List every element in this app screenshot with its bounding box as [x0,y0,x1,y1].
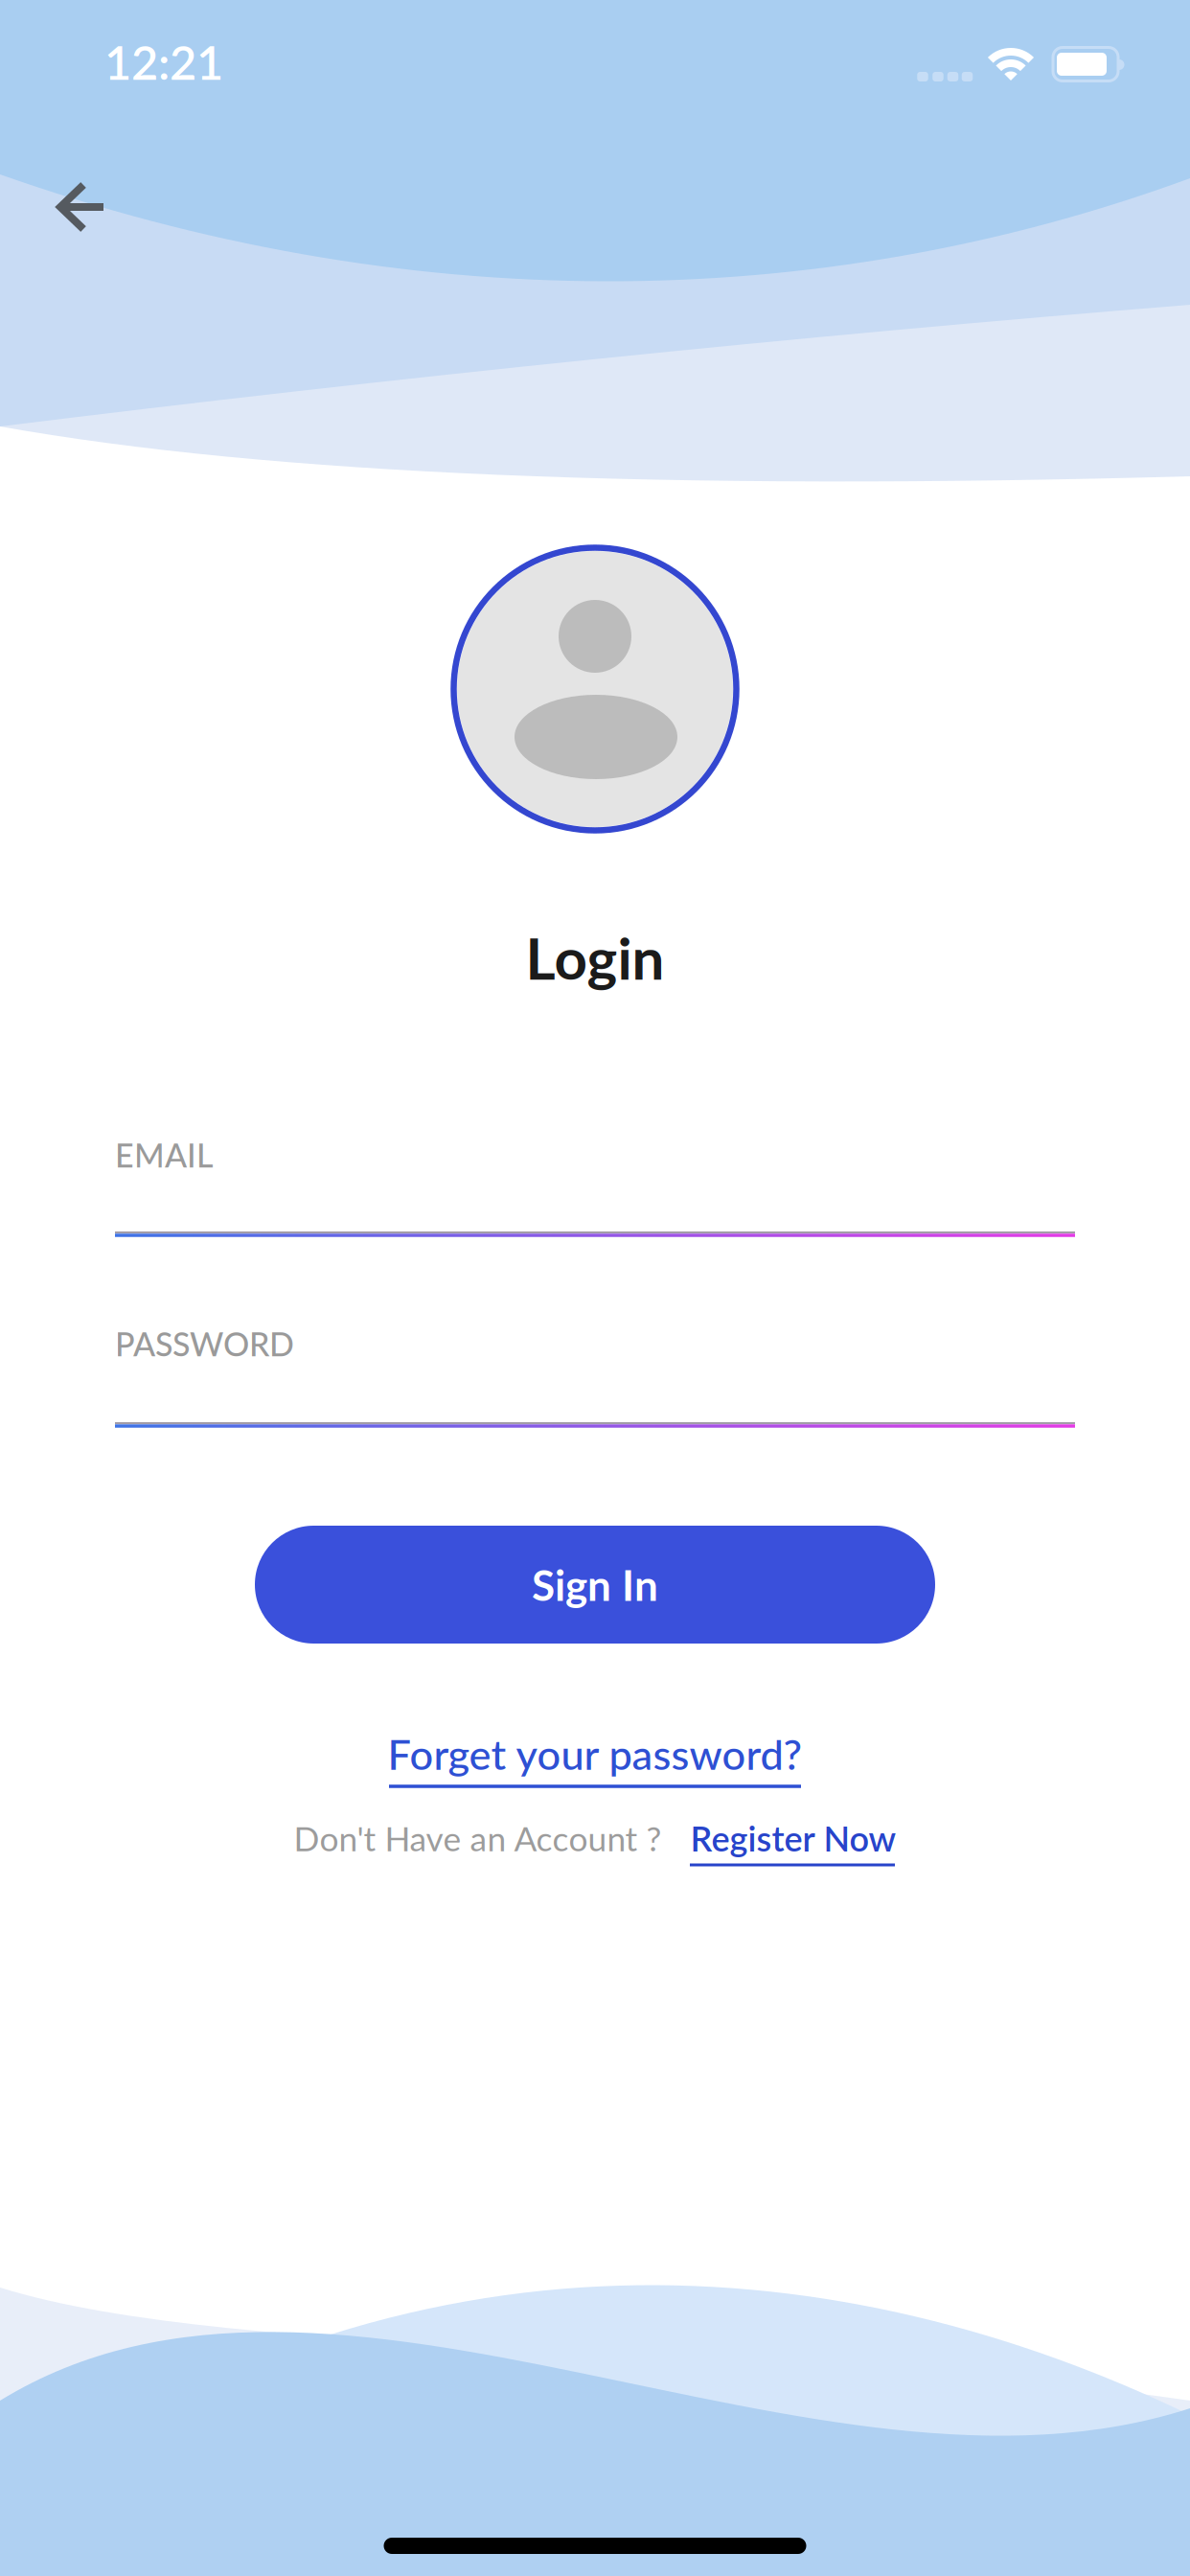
button[interactable]: Forget your password? [388,1729,802,1779]
staticText: 12:21 [104,34,223,90]
staticText: PASSWORD [115,1324,294,1363]
button[interactable]: Register Now [690,1817,896,1859]
button[interactable]: Sign In [255,1526,935,1644]
staticText: Register Now [690,1817,896,1859]
staticText: Forget your password? [388,1729,802,1779]
staticText: Sign In [532,1559,658,1610]
staticText: Login [526,923,664,992]
button[interactable]: Back [34,161,126,253]
staticText: Don't Have an Account ? [294,1818,662,1858]
staticText: EMAIL [115,1135,214,1174]
